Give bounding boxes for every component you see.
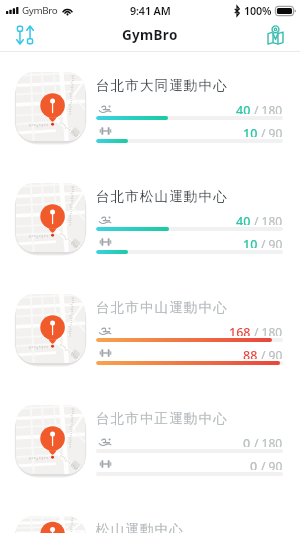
staticText: / 180 [254, 213, 283, 225]
button[interactable]: 台北市中正運動中心 [0, 385, 300, 496]
staticText: 40 [236, 213, 251, 225]
button[interactable]: 台北市大同運動中心 [0, 52, 300, 163]
staticText: 0 [243, 435, 251, 447]
staticText: 台北市大同運動中心 [96, 77, 228, 94]
button[interactable]: Sort [8, 20, 41, 51]
staticText: 40 [236, 102, 251, 114]
staticText: 台北市中山運動中心 [96, 299, 228, 316]
staticText: 台北市松山運動中心 [96, 188, 228, 205]
staticText: 10 [243, 236, 258, 248]
staticText: / 180 [254, 324, 283, 336]
staticText: 台北市中正運動中心 [96, 410, 228, 427]
staticText: 100% [244, 3, 272, 18]
staticText: 88 [243, 347, 258, 359]
staticText: / 180 [254, 435, 283, 447]
staticText: / 90 [261, 347, 283, 359]
staticText: / 180 [254, 102, 283, 114]
staticText: GymBro [22, 4, 58, 17]
staticText: / 90 [261, 125, 283, 137]
staticText: 0 [250, 458, 258, 470]
staticText: / 90 [261, 458, 283, 470]
staticText: GymBro [122, 26, 178, 44]
button[interactable]: Map [259, 20, 292, 51]
button[interactable]: 台北市松山運動中心 [0, 163, 300, 274]
staticText: / 90 [261, 236, 283, 248]
staticText: 松山運動中心 [96, 521, 184, 533]
button[interactable]: 松山運動中心 [0, 496, 300, 533]
button[interactable]: 台北市中山運動中心 [0, 274, 300, 385]
staticText: 9:41 AM [130, 3, 171, 18]
staticText: 10 [243, 125, 258, 137]
staticText: 168 [229, 324, 251, 336]
